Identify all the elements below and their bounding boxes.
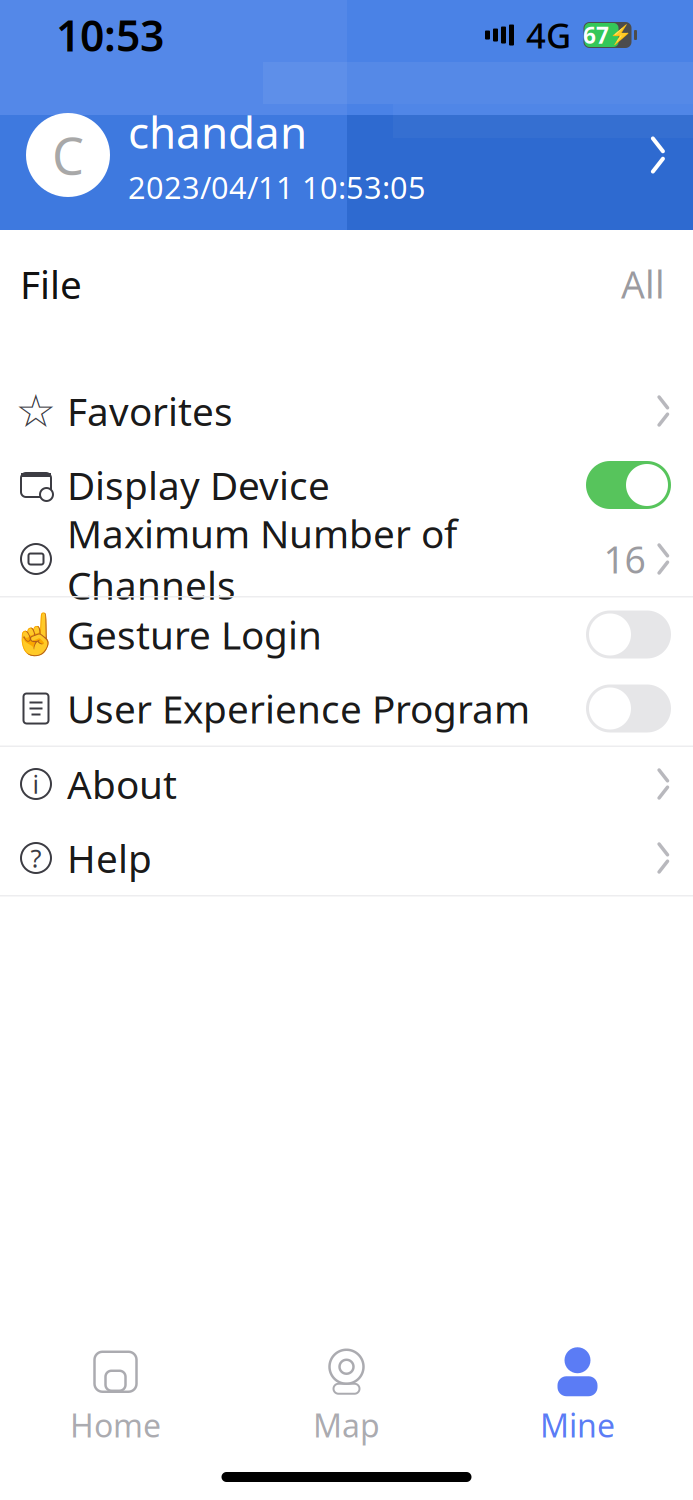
button[interactable]: User Experience Program bbox=[0, 671, 693, 745]
staticText: ☝ bbox=[11, 612, 61, 657]
staticText: Favorites bbox=[67, 385, 233, 437]
staticText: 2023/04/11 10:53:05 bbox=[128, 167, 426, 208]
staticText: Map bbox=[313, 1404, 380, 1446]
staticText: Gesture Login bbox=[67, 609, 322, 660]
button[interactable]: Display Device bbox=[0, 448, 693, 522]
staticText: About bbox=[67, 758, 177, 810]
button[interactable]: ? bbox=[0, 821, 693, 895]
staticText: ? bbox=[30, 841, 41, 875]
staticText: 67 bbox=[583, 20, 609, 50]
button[interactable]: ☆ bbox=[0, 374, 693, 448]
button[interactable]: Map bbox=[231, 1342, 462, 1452]
staticText: 10:53 bbox=[56, 7, 164, 63]
staticText: C bbox=[52, 121, 84, 189]
button[interactable]: i bbox=[0, 747, 693, 821]
staticText: File bbox=[20, 258, 82, 310]
staticText: All bbox=[621, 259, 665, 309]
button[interactable]: Mine bbox=[462, 1342, 693, 1452]
staticText: Help bbox=[67, 832, 152, 884]
staticText: Mine bbox=[540, 1404, 615, 1446]
staticText: 16 bbox=[604, 534, 646, 584]
button[interactable]: All bbox=[613, 253, 673, 315]
button[interactable]: Home bbox=[0, 1342, 231, 1452]
staticText: Display Device bbox=[67, 459, 330, 511]
staticText: Maximum Number of Channels bbox=[67, 508, 457, 610]
staticText: Home bbox=[70, 1404, 161, 1446]
button[interactable]: C bbox=[0, 110, 693, 200]
staticText: ☆ bbox=[15, 385, 56, 437]
staticText: chandan bbox=[128, 102, 307, 161]
staticText: i bbox=[32, 767, 39, 801]
button[interactable]: Maximum Number of Channels bbox=[0, 522, 693, 596]
staticText: ⚡ bbox=[609, 24, 632, 46]
staticText: 4G bbox=[526, 12, 571, 58]
button[interactable]: ☝ bbox=[0, 597, 693, 671]
staticText: User Experience Program bbox=[67, 683, 530, 734]
